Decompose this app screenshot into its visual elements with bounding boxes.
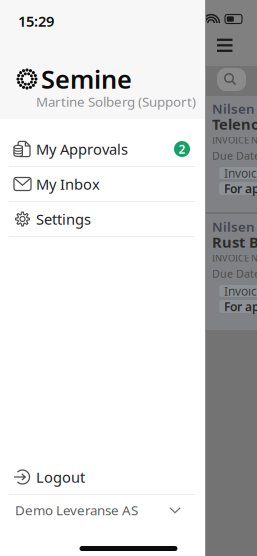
- staticText: 2: [178, 141, 185, 157]
- button[interactable]: Settings: [0, 202, 205, 236]
- staticText: INVOICE NO: [212, 252, 257, 264]
- staticText: My Approvals: [36, 139, 128, 159]
- staticText: Logout: [36, 467, 85, 487]
- staticText: Nilsen Ho: [212, 100, 257, 117]
- staticText: For app: [224, 180, 257, 196]
- staticText: Settings: [36, 209, 91, 229]
- staticText: Rust Bilut: [212, 232, 257, 252]
- staticText: INVOICE NO: [212, 134, 257, 146]
- button[interactable]: Menu: [206, 29, 244, 60]
- button[interactable]: Logout: [0, 460, 205, 494]
- staticText: Nilsen Ho: [212, 218, 257, 235]
- button[interactable]: My Inbox: [0, 167, 205, 201]
- staticText: Due Date: [212, 266, 257, 281]
- staticText: My Inbox: [36, 174, 100, 194]
- staticText: Invoice: [224, 165, 257, 181]
- staticText: Martine Solberg (Support): [36, 93, 196, 110]
- staticText: For app: [224, 298, 257, 314]
- staticText: Due Date: [212, 148, 257, 163]
- staticText: Demo Leveranse AS: [15, 501, 138, 519]
- staticText: Telenor A: [212, 114, 257, 134]
- button[interactable]: Demo Leveranse AS: [0, 495, 205, 525]
- staticText: Invoice: [224, 283, 257, 299]
- staticText: 15:29: [18, 11, 54, 31]
- button[interactable]: My Approvals: [0, 132, 205, 166]
- staticText: Semine: [41, 62, 132, 96]
